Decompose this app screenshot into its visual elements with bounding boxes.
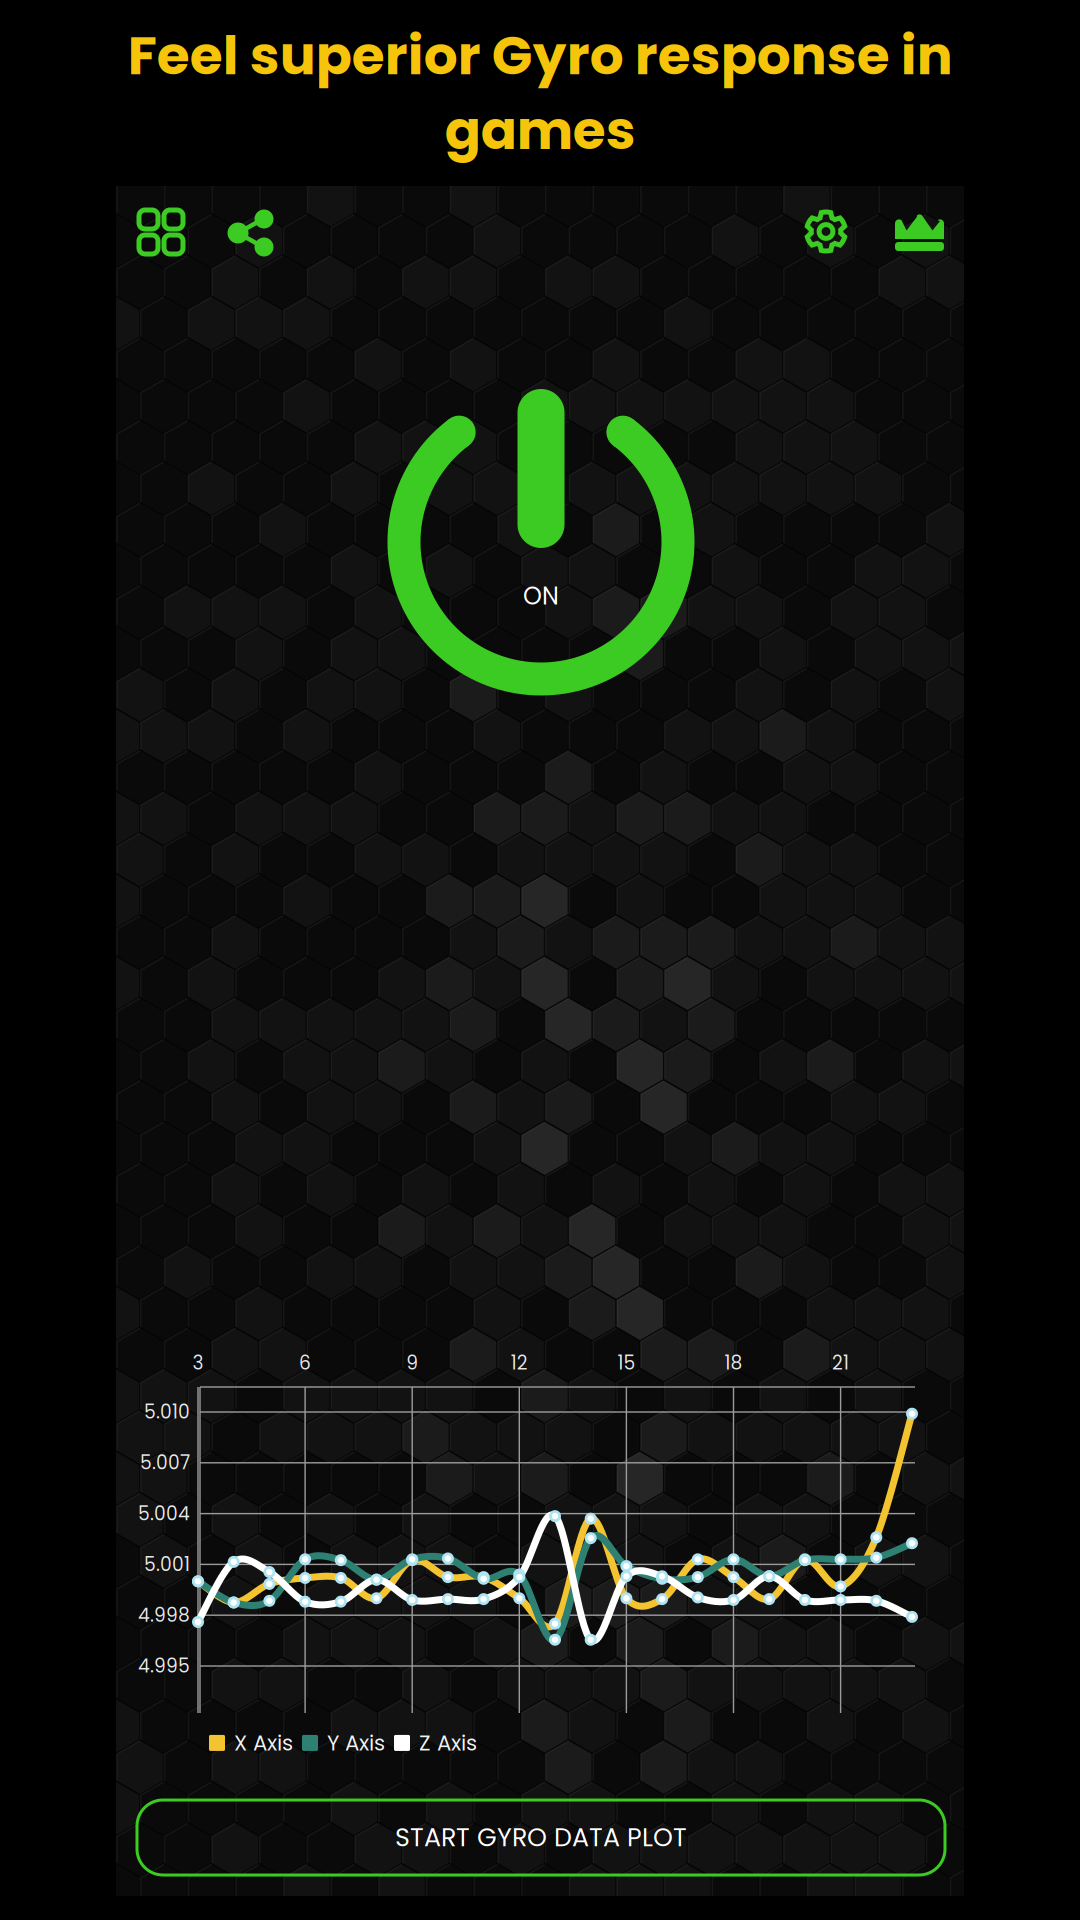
button[interactable]: Power toggle, on bbox=[390, 391, 692, 693]
staticText: 5.001 bbox=[144, 1551, 190, 1577]
staticText: Z Axis bbox=[419, 1728, 477, 1758]
staticText: 5.010 bbox=[144, 1399, 190, 1425]
staticText: Feel superior Gyro response in games bbox=[127, 18, 952, 168]
button[interactable]: Dashboard bbox=[139, 210, 183, 254]
staticText: 15 bbox=[617, 1350, 635, 1376]
button[interactable]: START GYRO DATA PLOT bbox=[137, 1800, 945, 1875]
staticText: 12 bbox=[511, 1350, 528, 1376]
button[interactable]: Premium bbox=[895, 216, 944, 252]
staticText: 9 bbox=[406, 1350, 418, 1376]
staticText: 5.004 bbox=[138, 1500, 190, 1527]
staticText: 4.995 bbox=[138, 1653, 190, 1679]
staticText: Y Axis bbox=[327, 1728, 385, 1758]
staticText: 18 bbox=[724, 1350, 742, 1376]
staticText: 5.007 bbox=[140, 1450, 190, 1476]
staticText: ON bbox=[523, 579, 559, 613]
button[interactable]: Settings bbox=[804, 208, 848, 255]
staticText: 3 bbox=[192, 1350, 203, 1376]
staticText: 21 bbox=[832, 1350, 849, 1376]
staticText: X Axis bbox=[234, 1728, 293, 1758]
staticText: START GYRO DATA PLOT bbox=[395, 1820, 687, 1855]
staticText: 6 bbox=[299, 1350, 311, 1376]
staticText: 4.998 bbox=[138, 1602, 190, 1628]
button[interactable]: Share bbox=[227, 208, 275, 258]
